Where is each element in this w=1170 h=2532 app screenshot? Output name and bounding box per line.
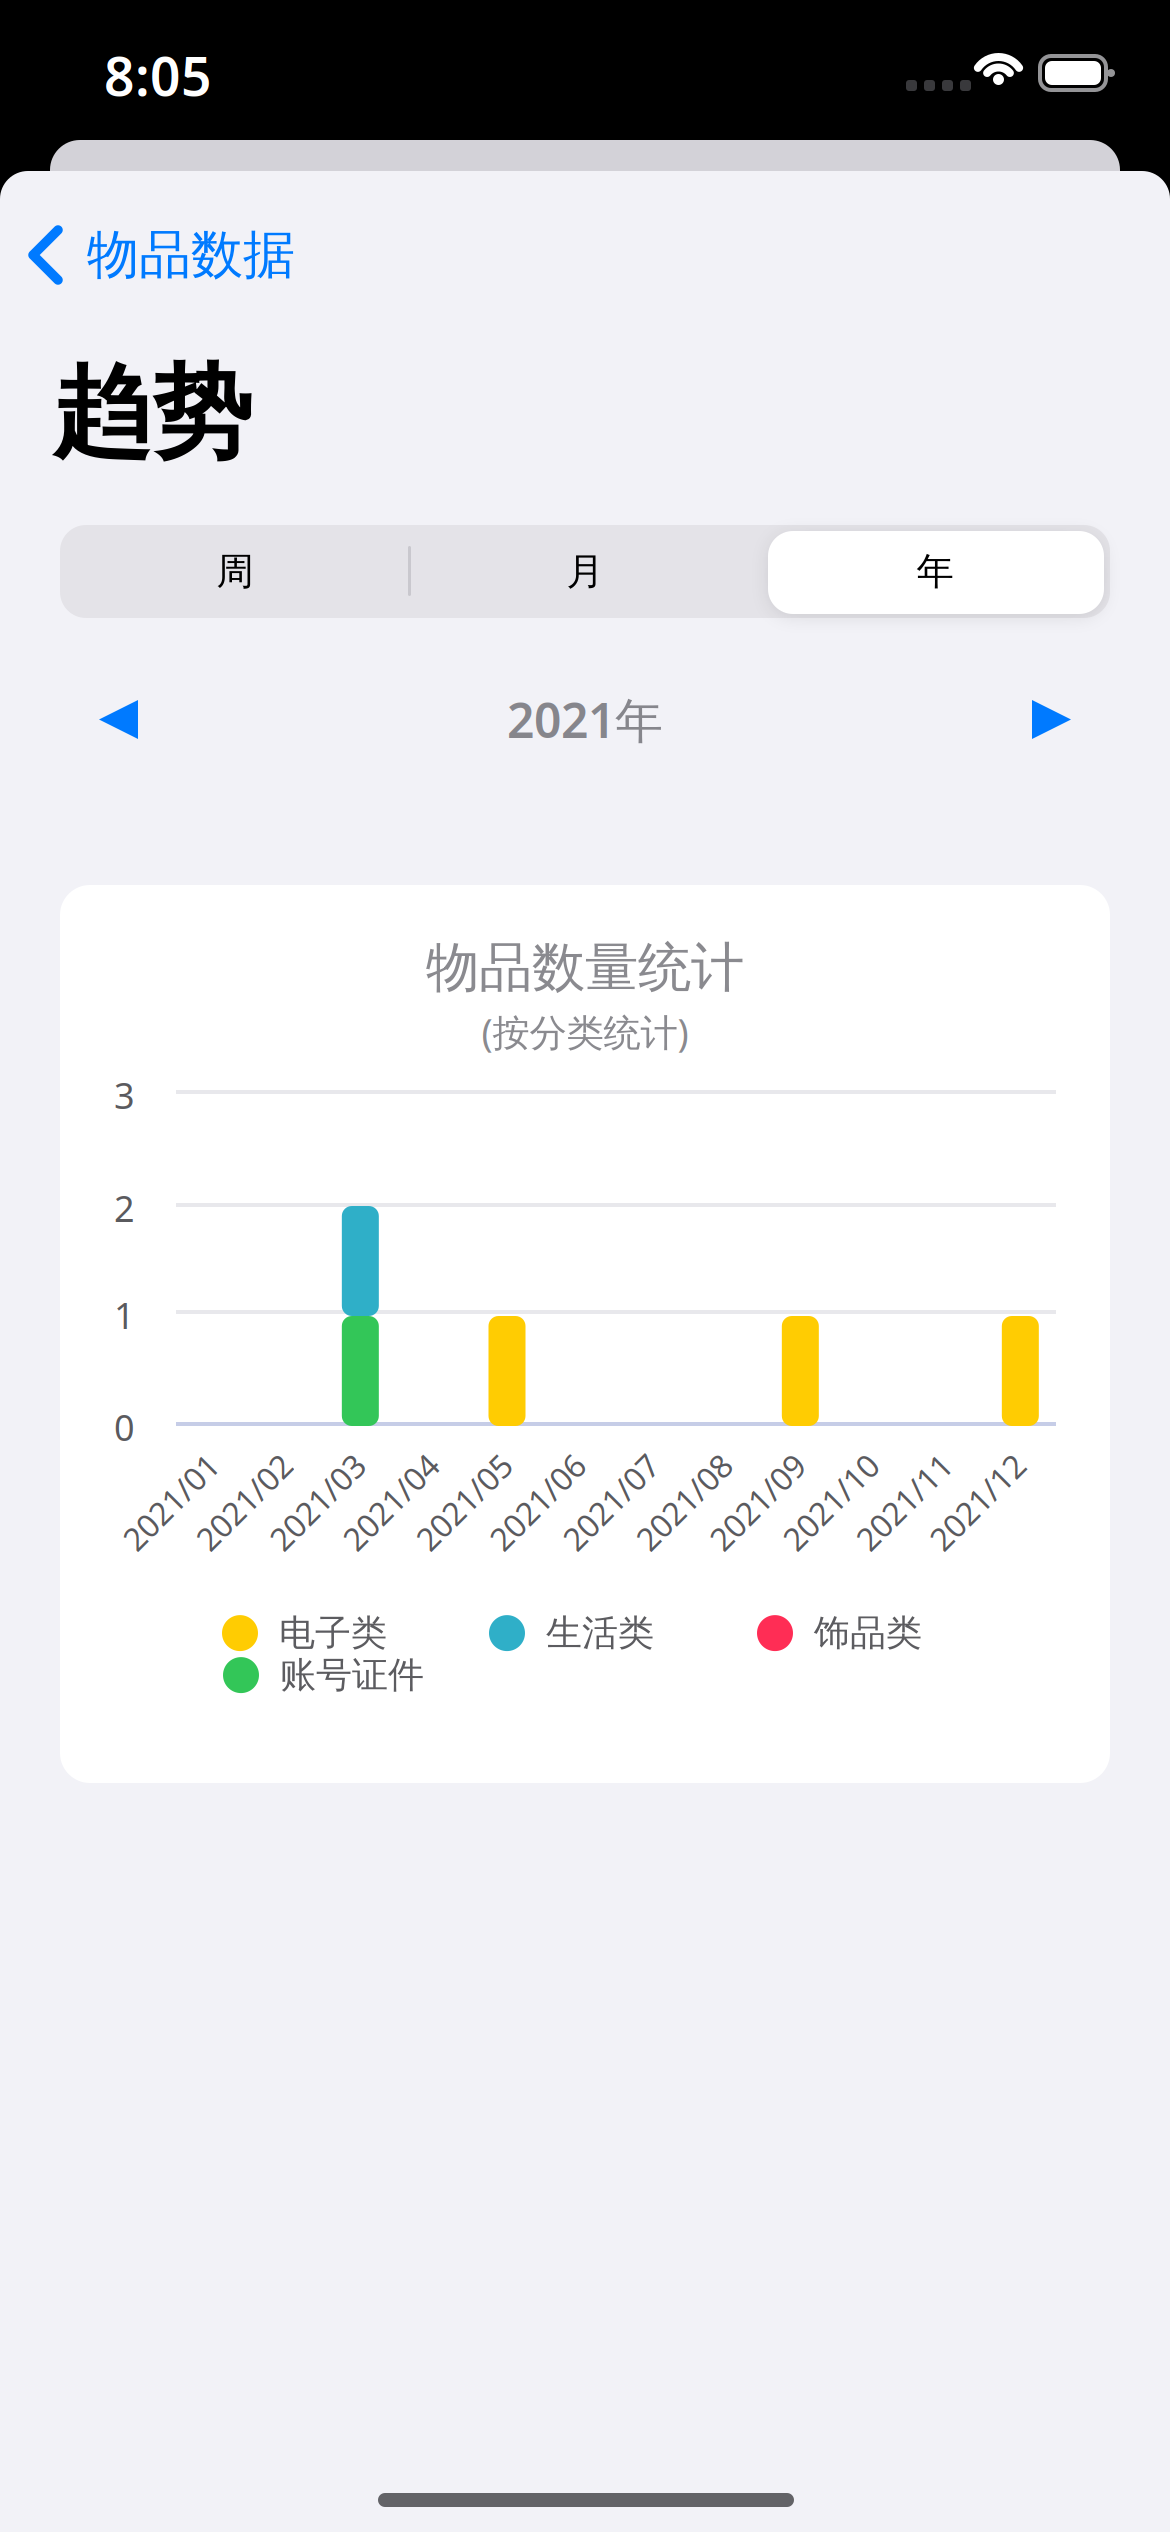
staticText: 8:05: [104, 40, 212, 111]
staticText: 2021/12: [917, 1481, 1037, 1523]
staticText: 2021/11: [844, 1481, 964, 1523]
staticText: 电子类: [279, 1611, 387, 1655]
staticText: 2021/07: [551, 1481, 671, 1523]
staticText: 2021/06: [477, 1481, 597, 1523]
button[interactable]: 周: [60, 525, 410, 618]
button[interactable]: 月: [410, 525, 760, 618]
staticText: 2021/08: [624, 1481, 744, 1523]
staticText: 年: [916, 549, 953, 594]
staticText: 趋势: [52, 352, 252, 475]
staticText: 0: [114, 1403, 135, 1451]
button[interactable]: Previous year: [76, 677, 161, 762]
staticText: 2021/10: [771, 1481, 891, 1523]
staticText: (按分类统计): [481, 1007, 688, 1057]
staticText: 2021/09: [697, 1481, 817, 1523]
staticText: 月: [566, 549, 603, 594]
staticText: 2021/05: [404, 1481, 524, 1523]
staticText: 2021年: [507, 688, 663, 751]
staticText: 物品数量统计: [426, 935, 744, 1000]
button[interactable]: Next year: [1009, 677, 1094, 762]
button[interactable]: 年: [760, 525, 1110, 618]
staticText: 周: [216, 549, 253, 594]
staticText: 2021/02: [184, 1481, 304, 1523]
staticText: 饰品类: [814, 1611, 922, 1655]
staticText: 生活类: [546, 1611, 654, 1655]
button[interactable]: 物品数据: [0, 207, 325, 303]
staticText: 账号证件: [280, 1653, 424, 1697]
staticText: 2021/04: [331, 1481, 451, 1523]
staticText: 2021/01: [111, 1481, 231, 1523]
staticText: 2: [114, 1184, 135, 1232]
staticText: 1: [114, 1291, 135, 1339]
staticText: 3: [114, 1071, 135, 1119]
staticText: 物品数据: [87, 223, 295, 287]
staticText: 2021/03: [257, 1481, 377, 1523]
